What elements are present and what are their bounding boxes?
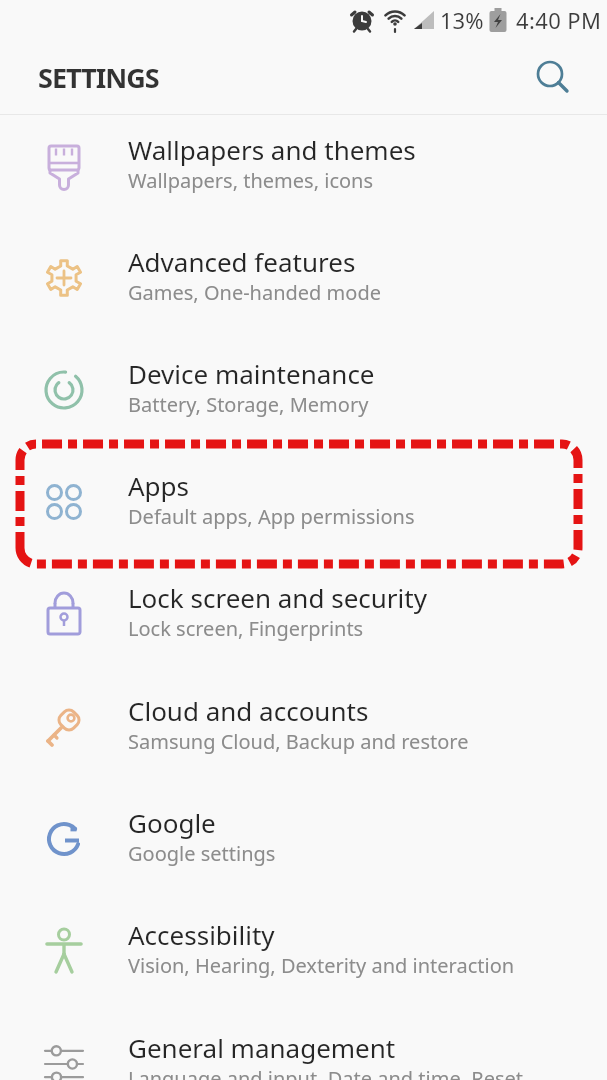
staticText: Accessibility bbox=[128, 917, 275, 952]
button[interactable]: Wallpapers and themes bbox=[0, 114, 607, 226]
staticText: General management bbox=[128, 1030, 396, 1065]
staticText: Google settings bbox=[128, 840, 276, 867]
staticText: Advanced features bbox=[128, 244, 356, 279]
button[interactable]: Advanced features bbox=[0, 226, 607, 338]
button[interactable]: Lock screen and security bbox=[0, 562, 607, 674]
staticText: Vision, Hearing, Dexterity and interacti… bbox=[128, 952, 515, 979]
button[interactable]: Accessibility bbox=[0, 899, 607, 1011]
staticText: Lock screen, Fingerprints bbox=[128, 615, 364, 642]
staticText: Google bbox=[128, 805, 216, 840]
staticText: Apps bbox=[128, 468, 190, 503]
staticText: Device maintenance bbox=[128, 356, 375, 391]
staticText: Language and input, Date and time, Reset bbox=[128, 1065, 524, 1080]
button[interactable]: Apps bbox=[0, 450, 607, 562]
staticText: Lock screen and security bbox=[128, 580, 427, 615]
staticText: Cloud and accounts bbox=[128, 693, 369, 728]
button[interactable]: General management bbox=[0, 1012, 607, 1080]
staticText: Default apps, App permissions bbox=[128, 503, 415, 530]
button[interactable]: Google bbox=[0, 787, 607, 899]
button[interactable]: Device maintenance bbox=[0, 338, 607, 450]
staticText: Games, One-handed mode bbox=[128, 279, 381, 306]
button[interactable] bbox=[530, 55, 574, 99]
staticText: Wallpapers, themes, icons bbox=[128, 167, 374, 194]
staticText: Wallpapers and themes bbox=[128, 132, 416, 167]
button[interactable]: Cloud and accounts bbox=[0, 675, 607, 787]
staticText: 4:40 PM bbox=[516, 5, 602, 35]
staticText: SETTINGS bbox=[38, 59, 159, 96]
staticText: 13% bbox=[440, 5, 484, 35]
staticText: Battery, Storage, Memory bbox=[128, 391, 369, 418]
staticText: Samsung Cloud, Backup and restore bbox=[128, 728, 469, 755]
